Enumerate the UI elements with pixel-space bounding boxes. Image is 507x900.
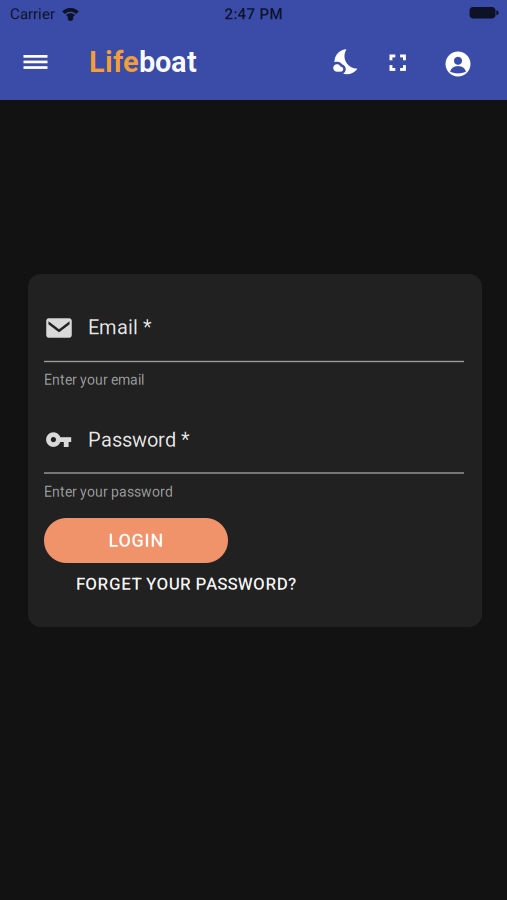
staticText: Life bbox=[89, 45, 139, 79]
staticText: Password * bbox=[88, 428, 190, 452]
button[interactable]: Menu bbox=[13, 40, 57, 84]
button[interactable]: Account bbox=[436, 42, 480, 86]
staticText: 2:47 PM bbox=[224, 5, 282, 23]
button[interactable]: FORGET YOUR PASSWORD? bbox=[76, 574, 296, 594]
staticText: Enter your email bbox=[44, 372, 144, 388]
staticText: Enter your password bbox=[44, 484, 173, 500]
staticText: LOGIN bbox=[108, 530, 163, 551]
staticText: Email * bbox=[88, 316, 152, 339]
button[interactable]: Dark mode bbox=[324, 39, 366, 83]
staticText: boat bbox=[139, 45, 197, 79]
button[interactable]: LOGIN bbox=[44, 518, 228, 563]
staticText: FORGET YOUR PASSWORD? bbox=[76, 574, 296, 594]
staticText: Carrier bbox=[10, 5, 55, 23]
button[interactable]: Fullscreen bbox=[378, 41, 418, 85]
